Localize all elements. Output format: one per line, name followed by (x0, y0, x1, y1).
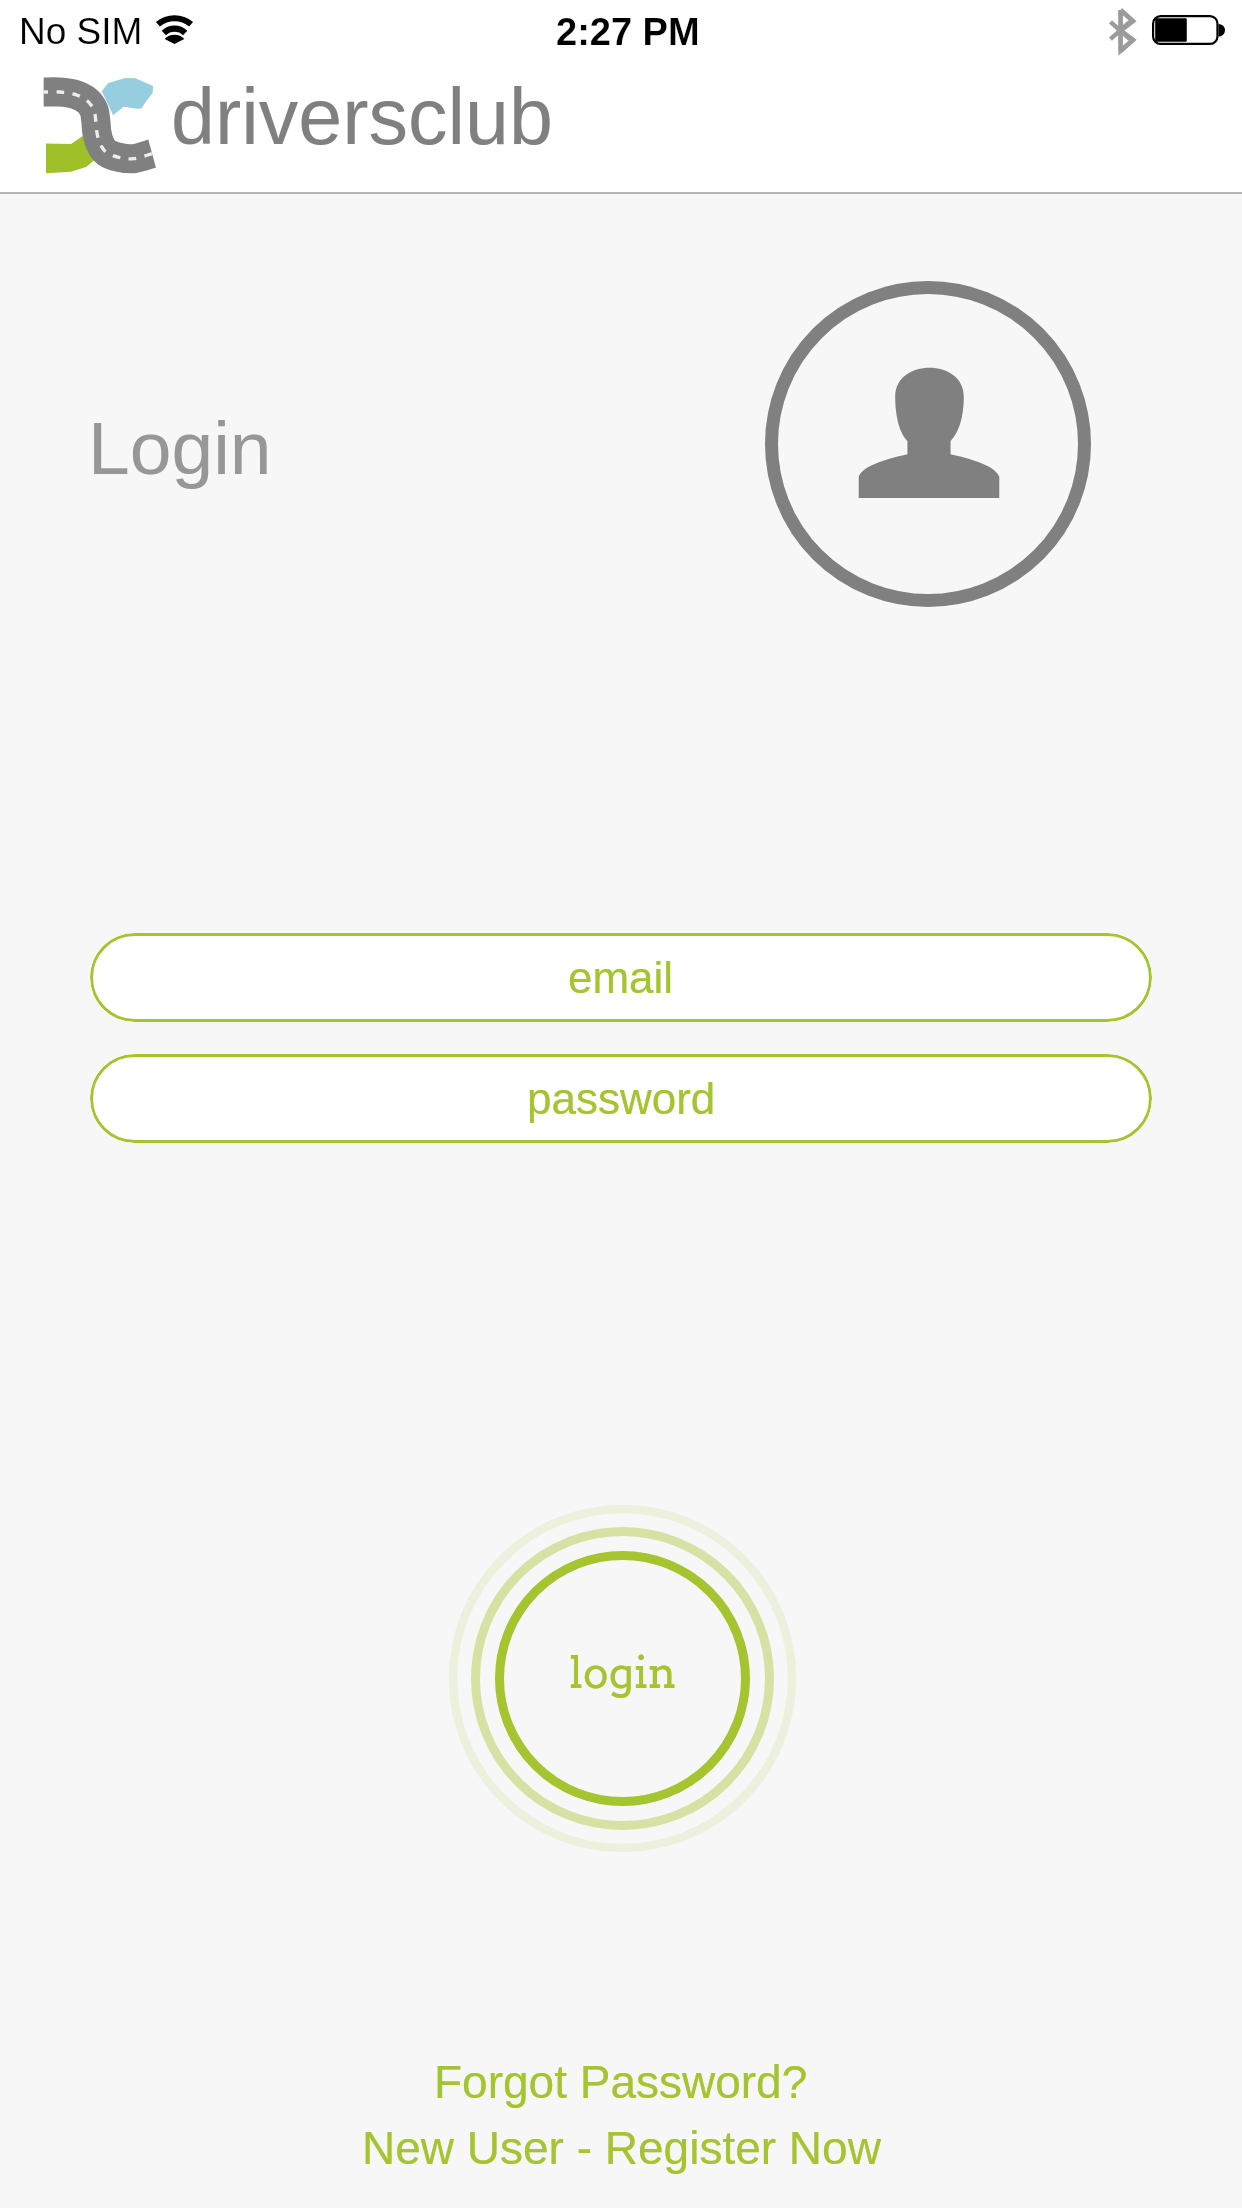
staticText: 2:27 PM (556, 11, 700, 53)
staticText: Login (88, 406, 272, 490)
staticText: Forgot Password? (434, 2056, 808, 2107)
staticText: login (569, 1647, 677, 1699)
staticText: email (568, 953, 674, 1002)
button[interactable]: login (442, 1498, 803, 1859)
button[interactable]: email (90, 933, 1152, 1022)
staticText: driversclub (171, 72, 553, 160)
staticText: password (527, 1074, 716, 1123)
button[interactable]: Forgot Password? (421, 2053, 821, 2109)
button[interactable]: New User - Register Now (351, 2119, 891, 2175)
staticText: New User - Register Now (362, 2122, 881, 2173)
button[interactable]: Profile photo (765, 281, 1091, 607)
staticText: No SIM (19, 11, 143, 52)
button[interactable]: password (90, 1054, 1152, 1143)
